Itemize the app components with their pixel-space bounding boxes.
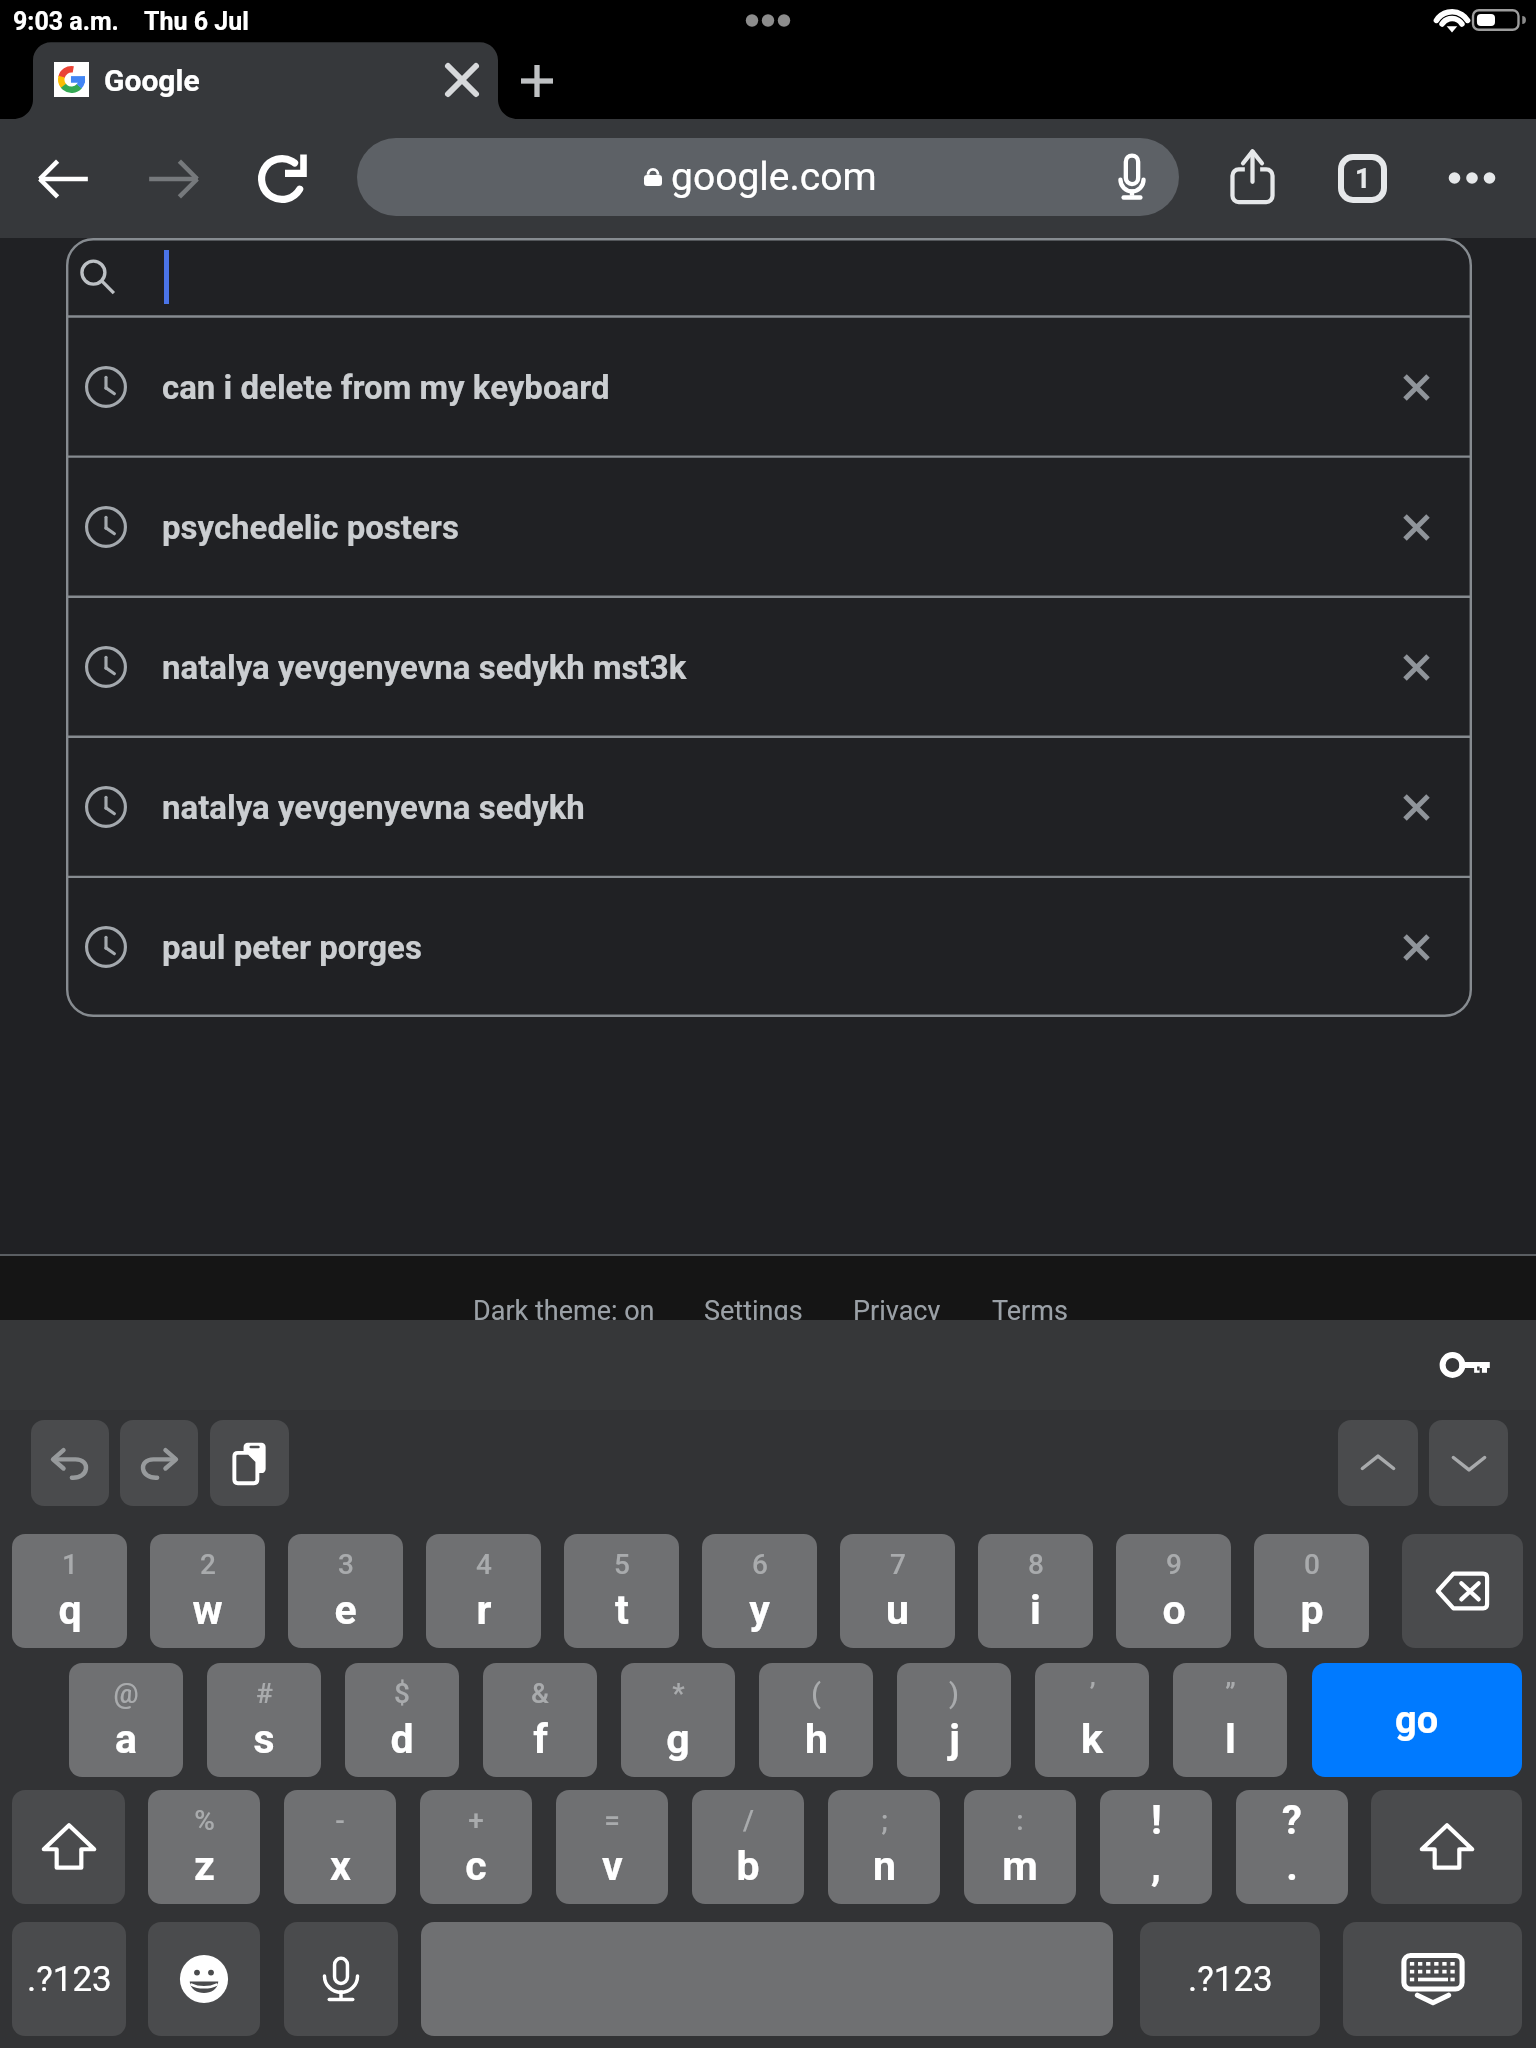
staticText: $ [394, 1677, 410, 1710]
button[interactable]: Remove natalya yevgenyevna sedykh mst3k [1378, 629, 1454, 705]
staticText: p [1300, 1586, 1324, 1634]
button[interactable]: Voice input [284, 1922, 398, 2036]
button[interactable]: ! [1100, 1790, 1212, 1904]
staticText: t [615, 1586, 629, 1634]
staticText: 0 [1304, 1548, 1320, 1581]
staticText: google.com [671, 154, 877, 200]
button[interactable]: : [964, 1790, 1076, 1904]
button[interactable]: .?123 [1140, 1922, 1320, 2036]
staticText: Privacy [853, 1295, 993, 1320]
button[interactable]: Remove paul peter porges [1378, 909, 1454, 985]
button[interactable]: ( [759, 1663, 873, 1777]
button[interactable]: # [207, 1663, 321, 1777]
staticText: x [330, 1842, 351, 1890]
button[interactable]: Reload [237, 134, 327, 224]
button[interactable]: 1 [12, 1534, 127, 1648]
button[interactable]: ; [828, 1790, 940, 1904]
button[interactable]: Close tab [423, 41, 501, 119]
staticText: 3 [338, 1548, 354, 1581]
staticText: / [743, 1804, 754, 1837]
staticText: Settings [704, 1295, 850, 1320]
button[interactable]: Shift [12, 1790, 125, 1904]
button[interactable]: $ [345, 1663, 459, 1777]
staticText: 1 [1355, 163, 1371, 195]
button[interactable]: % [148, 1790, 260, 1904]
button[interactable]: ” [1173, 1663, 1287, 1777]
button[interactable]: paul peter porges [66, 877, 1472, 1017]
button[interactable]: go [1312, 1663, 1522, 1777]
staticText: + [468, 1804, 484, 1837]
button[interactable]: Tabs [1316, 132, 1408, 224]
button[interactable]: - [284, 1790, 396, 1904]
button[interactable]: Remove natalya yevgenyevna sedykh [1378, 769, 1454, 845]
button[interactable]: Passwords [1432, 1333, 1496, 1397]
staticText: l [1225, 1715, 1236, 1763]
button[interactable]: Remove can i delete from my keyboard [1378, 349, 1454, 425]
staticText: i [1030, 1586, 1041, 1634]
button[interactable]: ) [897, 1663, 1011, 1777]
button[interactable]: 5 [564, 1534, 679, 1648]
button[interactable]: * [621, 1663, 735, 1777]
button[interactable]: = [556, 1790, 668, 1904]
button[interactable]: .?123 [12, 1922, 126, 2036]
button[interactable]: @ [69, 1663, 183, 1777]
button[interactable]: 3 [288, 1534, 403, 1648]
button[interactable]: Back [18, 134, 108, 224]
button[interactable]: natalya yevgenyevna sedykh [66, 737, 1472, 877]
button[interactable]: Scroll down [1429, 1420, 1508, 1506]
button[interactable]: Scroll up [1338, 1420, 1418, 1506]
button[interactable]: + [420, 1790, 532, 1904]
button[interactable]: 7 [840, 1534, 955, 1648]
button[interactable]: Voice search [1101, 146, 1163, 208]
button[interactable]: More options [1426, 132, 1518, 224]
button[interactable]: Hide keyboard [1343, 1922, 1522, 2036]
button[interactable]: natalya yevgenyevna sedykh mst3k [66, 597, 1472, 737]
button[interactable]: Emoji [148, 1922, 260, 2036]
staticText: 7 [890, 1548, 906, 1581]
staticText: go [1395, 1698, 1439, 1743]
button[interactable]: 2 [150, 1534, 265, 1648]
staticText: natalya yevgenyevna sedykh [162, 788, 1262, 827]
staticText: paul peter porges [162, 928, 1262, 967]
staticText: . [1286, 1843, 1298, 1890]
button[interactable]: Shift [1371, 1790, 1522, 1904]
staticText: n [873, 1842, 896, 1890]
staticText: c [465, 1842, 487, 1890]
staticText: u [886, 1586, 909, 1634]
button[interactable]: & [483, 1663, 597, 1777]
staticText: s [253, 1715, 275, 1763]
button[interactable]: Paste [210, 1420, 289, 1506]
button[interactable]: Share [1206, 130, 1298, 222]
button[interactable]: 4 [426, 1534, 541, 1648]
staticText: 9 [1166, 1548, 1182, 1581]
staticText: ? [1282, 1797, 1302, 1844]
staticText: Google [104, 63, 304, 98]
button[interactable]: 0 [1254, 1534, 1369, 1648]
staticText: ) [949, 1677, 959, 1710]
button[interactable]: 9 [1116, 1534, 1231, 1648]
staticText: g [666, 1715, 690, 1763]
staticText: natalya yevgenyevna sedykh mst3k [162, 648, 1262, 687]
button[interactable]: ’ [1035, 1663, 1149, 1777]
button[interactable]: Redo [120, 1420, 198, 1506]
staticText: - [335, 1804, 345, 1837]
button[interactable]: Undo [31, 1420, 109, 1506]
button[interactable]: google.com [357, 138, 1179, 216]
button[interactable]: Remove psychedelic posters [1378, 489, 1454, 565]
button[interactable]: New tab [498, 42, 576, 120]
button[interactable]: Forward [129, 134, 219, 224]
staticText: r [476, 1586, 492, 1634]
button[interactable]: 6 [702, 1534, 817, 1648]
button[interactable]: 8 [978, 1534, 1093, 1648]
button[interactable]: Backspace [1402, 1534, 1523, 1648]
staticText: can i delete from my keyboard [162, 368, 1262, 407]
button[interactable]: ? [1236, 1790, 1348, 1904]
staticText: , [1151, 1843, 1161, 1890]
staticText: @ [113, 1677, 139, 1710]
button[interactable]: psychedelic posters [66, 457, 1472, 597]
button[interactable]: / [692, 1790, 804, 1904]
staticText: Terms [992, 1295, 1112, 1320]
button[interactable]: can i delete from my keyboard [66, 317, 1472, 457]
staticText: k [1081, 1715, 1103, 1763]
